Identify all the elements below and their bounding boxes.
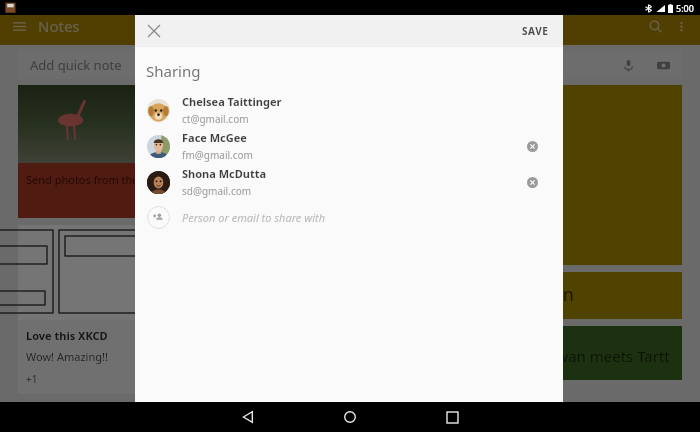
button[interactable]: Back [226,402,270,432]
button[interactable]: Person or email to share with [135,200,563,234]
staticText: Sharing [146,61,201,81]
button[interactable]: Chelsea Taittinger [135,92,563,128]
staticText: Shona McDutta [182,166,267,181]
staticText: SAVE [522,24,549,38]
staticText: Surprise party for Kristen [361,282,574,307]
button[interactable]: SAVE [508,18,563,44]
staticText: Face McGee [182,130,247,145]
staticText: When Jordan meets When Ewan meets Tartt [361,346,670,366]
button[interactable]: Search [644,15,666,37]
staticText: ct@gmail.com [182,112,249,126]
button[interactable]: Home [328,402,372,432]
button[interactable]: Menu [8,15,30,37]
staticText: fm@gmail.com [182,148,253,162]
button[interactable]: Recent apps [430,402,474,432]
staticText: 5:00 [676,2,694,14]
staticText: sd@gmail.com [182,184,252,198]
button[interactable]: Face McGee [135,128,563,164]
button[interactable]: Shona McDutta [135,164,563,200]
button[interactable]: More options [670,15,692,37]
staticText: Wow! Amazing!! [26,349,108,364]
button[interactable]: Close [140,17,168,45]
button[interactable]: Remove Shona McDutta [519,169,545,195]
staticText: Person or email to share with [182,210,325,225]
staticText: Notes [38,16,80,36]
staticText: Love this XKCD [26,328,108,343]
staticText: Send photos from the zoo [26,172,160,187]
staticText: +1 [26,372,38,386]
staticText: Chelsea Taittinger [182,94,282,109]
button[interactable]: Remove Face McGee [519,133,545,159]
staticText: Add quick note [30,56,122,74]
button[interactable]: Add quick note [18,51,682,79]
